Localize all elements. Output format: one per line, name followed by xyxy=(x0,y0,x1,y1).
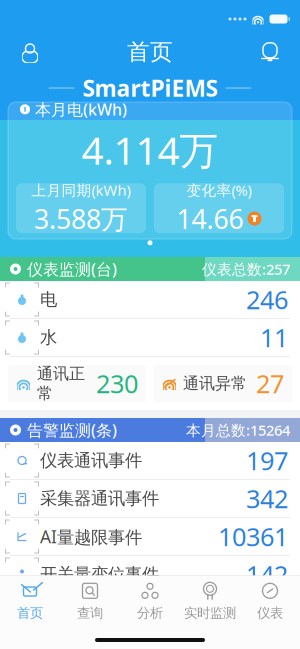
button[interactable]: 开关量变位事件 xyxy=(0,556,300,593)
staticText: 11 xyxy=(260,321,288,354)
staticText: 通讯异常 xyxy=(183,374,247,393)
staticText: 通讯正常 xyxy=(37,364,85,403)
staticText: 仪表总数:257 xyxy=(202,259,290,279)
staticText: 变化率(%) xyxy=(186,180,251,200)
staticText: 采集器通讯事件 xyxy=(40,488,159,509)
button[interactable]: 通讯正常 xyxy=(8,365,146,402)
button[interactable]: 仪表通讯事件 xyxy=(0,442,300,479)
button[interactable]: 首页 xyxy=(0,576,60,625)
button[interactable]: Notifications xyxy=(248,30,292,74)
staticText: 仪表通讯事件 xyxy=(40,450,142,471)
button[interactable]: AI量越限事件 xyxy=(0,518,300,555)
staticText: 分析 xyxy=(137,605,163,621)
staticText: 仪表监测(台) xyxy=(27,258,117,280)
button[interactable]: 仪表 xyxy=(240,576,300,625)
staticText: 230 xyxy=(96,367,138,400)
staticText: 27 xyxy=(256,367,284,400)
staticText: 首页 xyxy=(17,605,43,621)
staticText: 开关量变位事件 xyxy=(40,564,159,585)
staticText: 查询 xyxy=(77,605,103,621)
staticText: 本月总数:15264 xyxy=(186,420,290,440)
staticText: 电 xyxy=(40,289,57,310)
staticText: 3.588万 xyxy=(34,201,128,236)
staticText: 上月同期(kWh) xyxy=(31,180,130,200)
button[interactable]: 通讯异常 xyxy=(154,365,292,402)
button[interactable]: 采集器通讯事件 xyxy=(0,480,300,517)
staticText: 实时监测 xyxy=(184,605,236,621)
staticText: 142 xyxy=(246,558,288,591)
staticText: 10361 xyxy=(218,520,288,553)
staticText: 246 xyxy=(246,283,288,316)
button[interactable]: 分析 xyxy=(120,576,180,625)
button[interactable]: 实时监测 xyxy=(180,576,240,625)
staticText: 告警监测(条) xyxy=(27,419,117,441)
staticText: 仪表 xyxy=(257,605,283,621)
button[interactable]: Profile xyxy=(8,30,52,74)
staticText: 水 xyxy=(40,327,57,348)
staticText: 342 xyxy=(246,482,288,515)
button[interactable]: 电 xyxy=(0,281,300,318)
button[interactable]: 查询 xyxy=(60,576,120,625)
staticText: 14.66 xyxy=(176,201,243,236)
staticText: AI量越限事件 xyxy=(40,525,142,548)
staticText: SmartPiEMS xyxy=(82,73,217,103)
button[interactable]: 水 xyxy=(0,319,300,356)
staticText: 本月电(kWh) xyxy=(35,99,127,120)
staticText: 197 xyxy=(246,444,288,477)
staticText: 4.114万 xyxy=(81,124,218,175)
staticText: 首页 xyxy=(127,38,173,66)
